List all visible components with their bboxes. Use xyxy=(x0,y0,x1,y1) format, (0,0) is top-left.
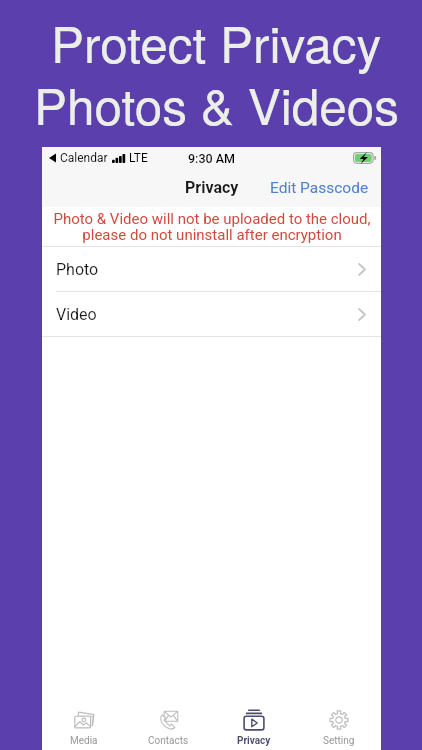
button[interactable]: Photo xyxy=(42,247,381,291)
button[interactable]: Setting xyxy=(296,698,381,750)
staticText: Contacts xyxy=(148,735,189,747)
staticText: Video xyxy=(56,305,97,324)
button[interactable]: Edit Passcode xyxy=(260,173,381,203)
staticText: LTE xyxy=(129,151,148,165)
staticText: Edit Passcode xyxy=(270,179,369,197)
staticText: Calendar xyxy=(60,151,108,165)
staticText: Protect Privacy xyxy=(51,6,382,77)
staticText: Photo & Video will not be uploaded to th… xyxy=(53,210,371,244)
button[interactable]: Contacts xyxy=(126,698,211,750)
staticText: Privacy xyxy=(185,178,239,197)
staticText: Photo xyxy=(56,260,99,279)
staticText: Photos & Videos xyxy=(34,68,399,139)
staticText: 9:30 AM xyxy=(188,151,235,166)
button[interactable]: Privacy xyxy=(211,698,296,750)
staticText: Setting xyxy=(323,735,355,747)
button[interactable]: Video xyxy=(42,292,381,336)
staticText: Media xyxy=(70,735,98,747)
staticText: Privacy xyxy=(237,735,271,747)
button[interactable]: Media xyxy=(42,698,126,750)
